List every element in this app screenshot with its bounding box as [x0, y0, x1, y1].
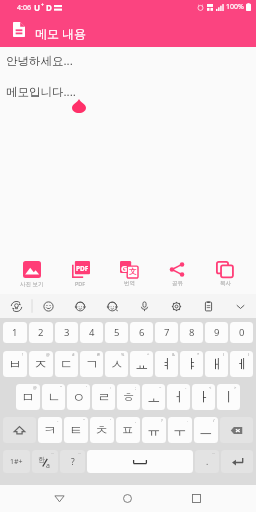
button[interactable]: ㅋ — [38, 417, 62, 443]
staticText: ㅅ — [110, 356, 124, 373]
staticText: 2 — [38, 326, 44, 339]
button[interactable]: 7 — [155, 322, 178, 343]
button[interactable]: 9 — [205, 322, 228, 343]
button[interactable]: ? — [60, 450, 85, 473]
staticText: @ — [46, 352, 50, 357]
button[interactable]: ㄱ — [80, 351, 103, 377]
button[interactable]: ㅌ — [64, 417, 88, 443]
staticText: 한 — [38, 455, 45, 464]
button[interactable]: ㅁ — [16, 384, 40, 410]
button[interactable] — [87, 450, 193, 473]
staticText: ( — [223, 352, 225, 357]
button[interactable]: ㅜ — [168, 417, 192, 443]
button[interactable]: ㅇ — [67, 384, 90, 410]
staticText: ㅣ — [222, 389, 236, 406]
button[interactable]: 3 — [55, 322, 78, 343]
staticText: * — [197, 352, 200, 357]
button[interactable]: Emoji — [32, 294, 64, 318]
button[interactable]: 사진 보기 — [7, 246, 56, 294]
staticText: 번역 — [124, 280, 135, 287]
button[interactable]: ㅑ — [180, 351, 203, 377]
button[interactable]: ㅏ — [192, 384, 215, 410]
staticText: ' — [110, 418, 111, 423]
button[interactable]: GIF — [96, 294, 128, 318]
staticText: 9 — [214, 326, 220, 339]
button[interactable]: ㅓ — [167, 384, 190, 410]
staticText: a — [46, 461, 50, 471]
button[interactable]: 5 — [105, 322, 128, 343]
button[interactable]: 8 — [180, 322, 203, 343]
button[interactable] — [3, 417, 36, 443]
staticText: 100% — [226, 2, 244, 12]
button[interactable]: ㅍ — [116, 417, 140, 443]
button[interactable]: ㅅ — [105, 351, 128, 377]
button[interactable]: ㅗ — [142, 384, 165, 410]
button[interactable]: Settings — [160, 294, 192, 318]
staticText: ㅊ — [95, 422, 109, 439]
staticText: ㅕ — [160, 356, 174, 373]
staticText: ? — [71, 456, 75, 468]
staticText: < — [209, 385, 212, 390]
staticText: ㅔ — [235, 356, 249, 373]
button[interactable]: 4 — [80, 322, 103, 343]
button[interactable]: Home — [93, 485, 162, 512]
button[interactable]: 2 — [29, 322, 53, 343]
staticText: ㅁ — [21, 389, 35, 406]
button[interactable]: 0 — [230, 322, 253, 343]
button[interactable]: 1 — [3, 322, 27, 343]
staticText: 복사 — [220, 280, 231, 287]
button[interactable]: ㅊ — [90, 417, 114, 443]
staticText: 1 — [12, 326, 18, 339]
staticText: " — [60, 385, 62, 390]
button[interactable]: ㅔ — [230, 351, 253, 377]
staticText: PDF — [75, 280, 86, 287]
button[interactable]: ㅠ — [142, 417, 166, 443]
staticText: ··· — [51, 451, 55, 456]
staticText: ? — [161, 418, 163, 423]
button[interactable]: . — [195, 450, 219, 473]
button[interactable]: Recents — [162, 485, 231, 512]
button[interactable]: ㄴ — [42, 384, 65, 410]
button[interactable]: 복사 — [201, 246, 249, 294]
staticText: ㅂ — [8, 356, 22, 373]
button[interactable]: ㅣ — [217, 384, 240, 410]
button[interactable]: ㄷ — [55, 351, 78, 377]
staticText: 공유 — [172, 280, 183, 287]
button[interactable]: Voice input — [128, 294, 160, 318]
button[interactable]: ㅡ — [194, 417, 218, 443]
staticText: G — [121, 262, 128, 274]
button[interactable]: 1#+ — [3, 450, 30, 473]
staticText: / — [213, 418, 215, 423]
staticText: ㅋ — [43, 422, 57, 439]
button[interactable]: 한 — [32, 450, 58, 473]
staticText: ㅈ — [34, 356, 48, 373]
staticText: 3 — [64, 326, 70, 339]
staticText: + — [41, 2, 44, 9]
button[interactable]: ㅈ — [29, 351, 53, 377]
button[interactable]: PDF — [56, 246, 105, 294]
staticText: ㅍ — [121, 422, 135, 439]
staticText: ㅎ — [122, 389, 136, 406]
staticText: 4 — [89, 326, 95, 339]
button[interactable]: 공유 — [153, 246, 201, 294]
button[interactable]: ㅂ — [3, 351, 27, 377]
button[interactable]: G — [105, 246, 153, 294]
button[interactable]: Sticker — [64, 294, 96, 318]
button[interactable]: Clipboard — [192, 294, 224, 318]
button[interactable]: Recent — [0, 294, 32, 318]
staticText: 文 — [129, 267, 137, 276]
button[interactable] — [220, 417, 253, 443]
button[interactable]: Collapse keyboard — [224, 294, 256, 318]
button[interactable]: ㄹ — [92, 384, 115, 410]
staticText: . — [187, 418, 189, 423]
button[interactable] — [221, 450, 253, 473]
staticText: ㅐ — [210, 356, 224, 373]
button[interactable]: ㅛ — [130, 351, 153, 377]
staticText: ㅜ — [173, 422, 187, 439]
button[interactable]: ㅎ — [117, 384, 140, 410]
button[interactable]: Back — [25, 485, 93, 512]
button[interactable]: ㅕ — [155, 351, 178, 377]
staticText: ㅏ — [197, 389, 211, 406]
button[interactable]: 6 — [130, 322, 153, 343]
button[interactable]: ㅐ — [205, 351, 228, 377]
